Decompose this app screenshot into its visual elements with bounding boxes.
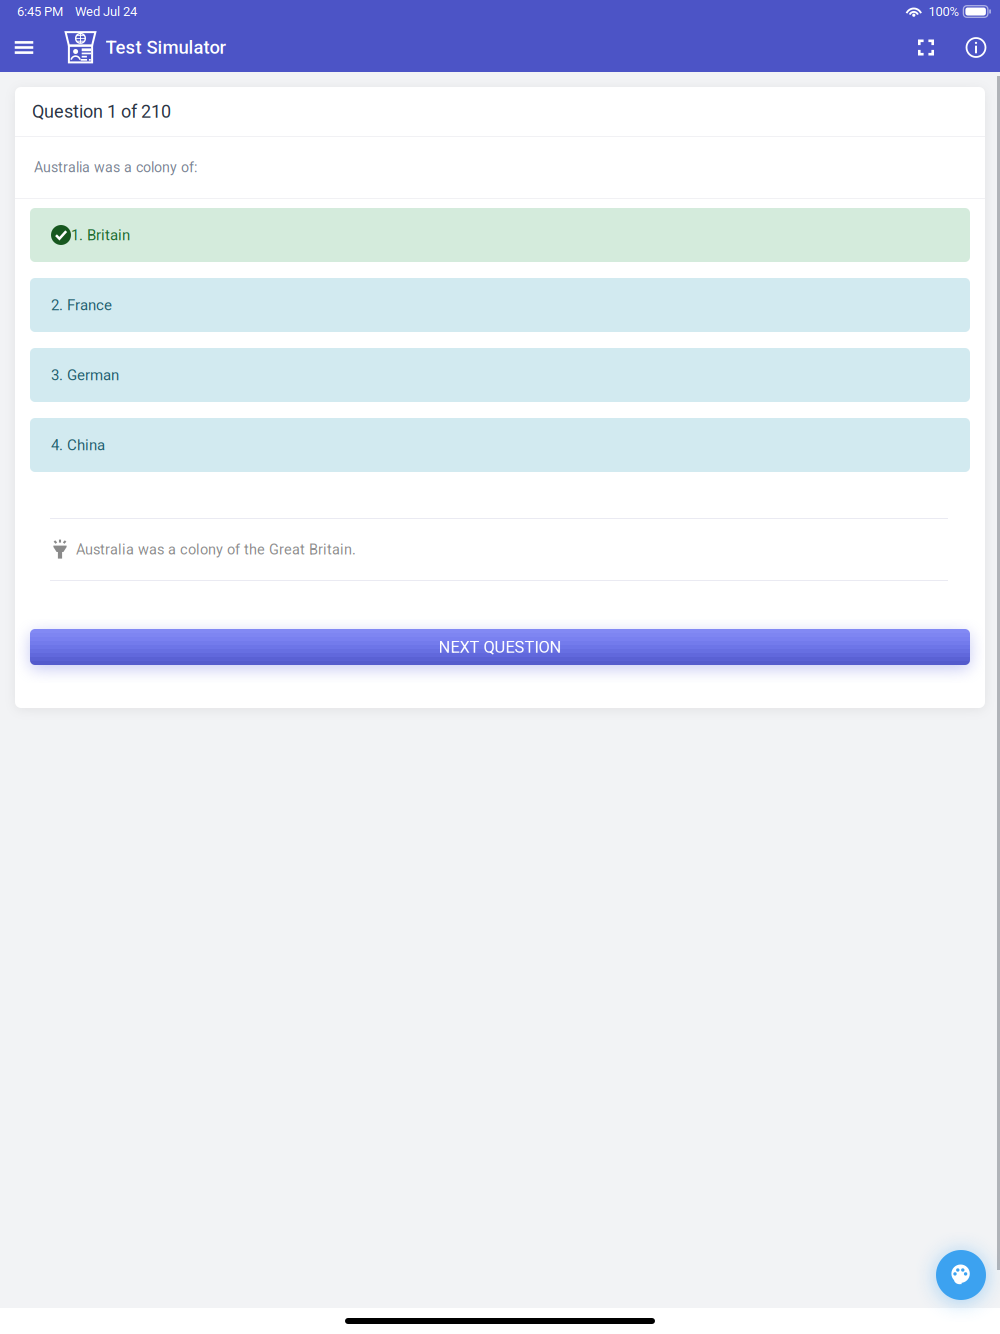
staticText: Wed Jul 24 bbox=[75, 4, 137, 19]
staticText: Australia was a colony of the Great Brit… bbox=[76, 541, 356, 558]
staticText: Test Simulator bbox=[105, 37, 226, 58]
button[interactable]: Menu bbox=[3, 24, 45, 71]
staticText: 3. German bbox=[51, 366, 119, 384]
staticText: 2. France bbox=[51, 296, 112, 314]
staticText: Australia was a colony of: bbox=[34, 159, 197, 176]
staticText: 1. Britain bbox=[71, 226, 130, 244]
staticText: NEXT QUESTION bbox=[438, 637, 561, 657]
staticText: Question 1 of 210 bbox=[32, 101, 171, 122]
button[interactable]: NEXT QUESTION bbox=[30, 629, 970, 665]
staticText: 100% bbox=[928, 4, 959, 19]
button[interactable]: 2. France bbox=[30, 278, 970, 332]
button[interactable]: Full screen bbox=[903, 24, 949, 70]
button[interactable]: 3. German bbox=[30, 348, 970, 402]
staticText: 6:45 PM bbox=[17, 4, 63, 19]
button[interactable]: 1. Britain bbox=[30, 208, 970, 262]
button[interactable]: 4. China bbox=[30, 418, 970, 472]
button[interactable]: Information bbox=[953, 24, 999, 70]
button[interactable]: Change theme bbox=[936, 1250, 986, 1300]
staticText: 4. China bbox=[51, 436, 105, 454]
